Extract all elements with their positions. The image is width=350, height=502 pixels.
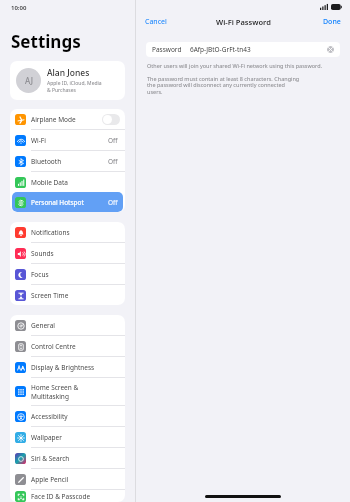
staticText: Mobile Data — [31, 178, 68, 187]
staticText: Wi-Fi — [31, 136, 46, 145]
staticText: Wi-Fi Password — [216, 17, 271, 27]
button[interactable]: Airplane Mode — [12, 109, 123, 129]
button[interactable]: Wallpaper — [12, 427, 123, 447]
staticText: Apple ID, iCloud, Media — [47, 80, 102, 87]
button[interactable]: Apple Pencil — [12, 469, 123, 489]
staticText: Home Screen & — [31, 383, 79, 392]
staticText: Focus — [31, 270, 49, 279]
button[interactable]: Wi-Fi — [12, 130, 123, 150]
button[interactable]: Control Centre — [12, 336, 123, 356]
button[interactable]: Airplane Mode toggle — [102, 114, 120, 125]
staticText: General — [31, 321, 55, 330]
staticText: Settings — [11, 30, 81, 53]
button[interactable]: Home Screen & — [12, 378, 123, 405]
staticText: Off — [108, 198, 118, 207]
button[interactable]: Display & Brightness — [12, 357, 123, 377]
button[interactable]: Siri & Search — [12, 448, 123, 468]
staticText: Screen Time — [31, 291, 69, 300]
button[interactable]: Face ID & Passcode — [12, 490, 123, 502]
staticText: Sounds — [31, 249, 54, 258]
button[interactable]: General — [12, 315, 123, 335]
staticText: Apple Pencil — [31, 475, 69, 484]
button[interactable]: Personal Hotspot — [12, 192, 123, 212]
staticText: Password — [152, 45, 182, 54]
staticText: Cancel — [145, 17, 167, 27]
button[interactable]: Focus — [12, 264, 123, 284]
staticText: 6Afp-JBtO-GrFt-tn43 — [190, 45, 251, 54]
button[interactable]: Screen Time — [12, 285, 123, 305]
staticText: Off — [108, 136, 118, 145]
button[interactable]: Bluetooth — [12, 151, 123, 171]
staticText: Siri & Search — [31, 454, 70, 463]
staticText: Notifications — [31, 228, 70, 237]
staticText: The password must contain at least 8 cha… — [147, 75, 301, 96]
staticText: Other users will join your shared Wi-Fi … — [147, 62, 323, 69]
staticText: AJ — [25, 75, 33, 86]
button[interactable]: Mobile Data — [12, 172, 123, 192]
button[interactable]: Accessibility — [12, 406, 123, 426]
staticText: Display & Brightness — [31, 363, 95, 372]
staticText: Face ID & Passcode — [31, 492, 91, 501]
staticText: Accessibility — [31, 412, 68, 421]
staticText: Done — [323, 17, 341, 27]
button[interactable]: Cancel — [142, 15, 170, 29]
staticText: Bluetooth — [31, 157, 62, 166]
staticText: Alan Jones — [47, 67, 90, 79]
button[interactable]: Password — [146, 42, 340, 57]
staticText: Wallpaper — [31, 433, 62, 442]
staticText: 10:00 — [11, 4, 27, 12]
button[interactable]: Notifications — [12, 222, 123, 242]
staticText: Off — [108, 157, 118, 166]
button[interactable]: Done — [320, 15, 344, 29]
staticText: Control Centre — [31, 342, 76, 351]
staticText: Multitasking — [31, 392, 69, 401]
button[interactable]: AJ — [10, 61, 125, 100]
button[interactable]: Clear text — [327, 46, 334, 53]
staticText: Airplane Mode — [31, 115, 76, 124]
button[interactable]: Sounds — [12, 243, 123, 263]
staticText: Personal Hotspot — [31, 198, 84, 207]
staticText: & Purchases — [47, 87, 76, 94]
